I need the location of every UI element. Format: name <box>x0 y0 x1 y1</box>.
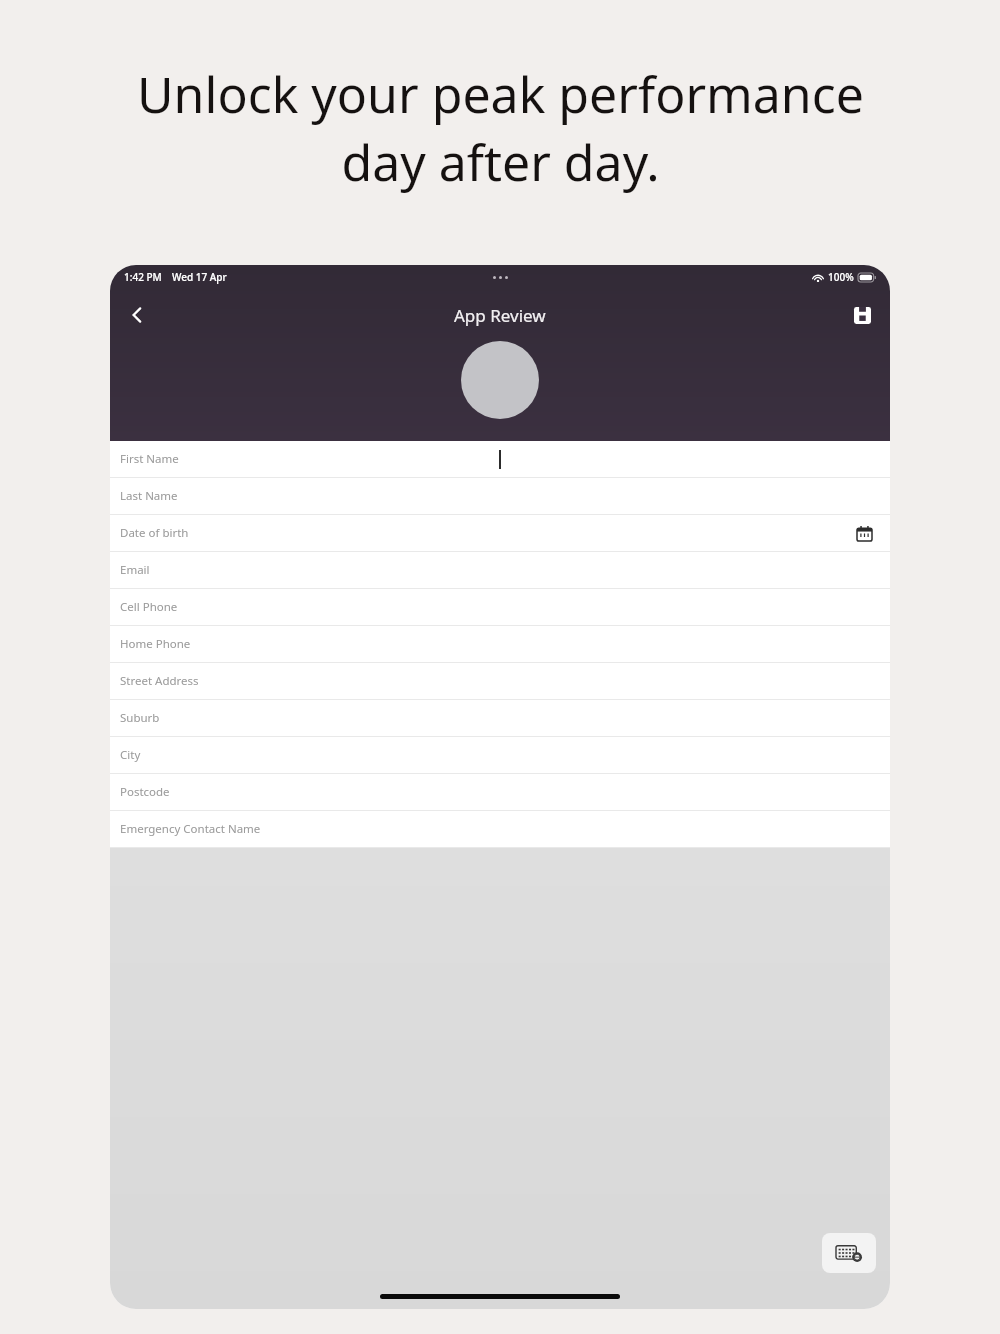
button[interactable]: Back <box>115 293 159 337</box>
staticText: Street Address <box>120 673 199 689</box>
staticText: day after day. <box>341 128 660 196</box>
staticText: 100% <box>828 270 854 284</box>
staticText: Wed 17 Apr <box>172 270 227 284</box>
staticText: Emergency Contact Name <box>120 821 261 837</box>
button[interactable]: Cell Phone <box>110 589 890 625</box>
button[interactable]: Pick date <box>854 523 874 543</box>
button[interactable]: Profile photo <box>461 341 539 419</box>
button[interactable]: First Name <box>110 441 890 477</box>
button[interactable]: Street Address <box>110 663 890 699</box>
button[interactable]: City <box>110 737 890 773</box>
staticText: Date of birth <box>120 525 189 541</box>
staticText: City <box>120 747 141 763</box>
staticText: Email <box>120 562 150 578</box>
button[interactable]: Suburb <box>110 700 890 736</box>
staticText: App Review <box>454 304 546 327</box>
staticText: Suburb <box>120 710 160 726</box>
button[interactable]: Dismiss keyboard <box>822 1233 876 1273</box>
button[interactable]: Last Name <box>110 478 890 514</box>
staticText: Cell Phone <box>120 599 178 615</box>
button[interactable]: Save <box>842 295 882 335</box>
staticText: 1:42 PM <box>124 270 162 284</box>
staticText: Home Phone <box>120 636 191 652</box>
button[interactable]: Postcode <box>110 774 890 810</box>
button[interactable]: Emergency Contact Name <box>110 811 890 847</box>
button[interactable]: Email <box>110 552 890 588</box>
staticText: Postcode <box>120 784 170 800</box>
button[interactable]: Date of birth <box>110 515 890 551</box>
staticText: First Name <box>120 451 179 467</box>
staticText: Last Name <box>120 488 178 504</box>
staticText: Unlock your peak performance <box>137 60 864 128</box>
button[interactable]: Home Phone <box>110 626 890 662</box>
